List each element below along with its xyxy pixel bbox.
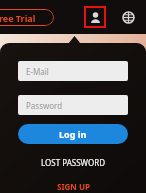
button[interactable]: Language [118, 7, 138, 27]
button[interactable]: Log in [18, 124, 128, 144]
staticText: LOST PASSWORD [41, 157, 105, 168]
staticText: Free Trial [0, 12, 36, 24]
button[interactable]: Account [84, 6, 106, 28]
button[interactable]: E-Mail [18, 61, 128, 81]
staticText: Log in [59, 128, 87, 140]
button[interactable]: Free Trial [0, 9, 54, 26]
button[interactable]: SIGN UP [18, 179, 128, 193]
button[interactable]: Password [18, 95, 128, 115]
staticText: Password [26, 100, 63, 111]
staticText: SIGN UP [57, 181, 90, 192]
button[interactable]: LOST PASSWORD [18, 155, 128, 169]
staticText: E-Mail [26, 66, 49, 77]
